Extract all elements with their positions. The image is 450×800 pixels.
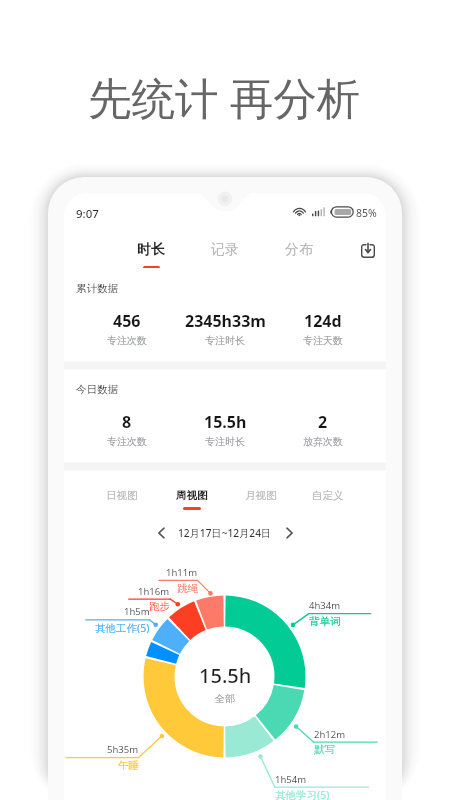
staticText: 专注次数 [107,435,147,448]
staticText: 456 [113,310,141,332]
button[interactable]: 时长 [129,236,173,272]
staticText: 全部 [215,692,235,705]
staticText: 累计数据 [76,282,118,295]
staticText: 9:07 [76,206,99,222]
staticText: 85% [356,206,377,220]
button[interactable]: Next week [280,524,298,542]
staticText: 背单词 [309,615,341,627]
button[interactable]: 累计数据 [64,268,386,361]
staticText: 默写 [314,743,335,755]
staticText: 15.5h [204,411,247,433]
button[interactable]: 自定义 [306,486,350,512]
button[interactable]: 记录 [203,236,247,272]
staticText: 自定义 [312,489,344,502]
staticText: 周视图 [176,489,208,502]
staticText: 专注时长 [205,435,245,448]
staticText: 2 [318,411,328,433]
staticText: 5h35m [107,743,139,755]
staticText: 12月17日~12月24日 [178,526,272,540]
staticText: 8 [122,411,132,433]
staticText: 跳绳 [177,582,198,594]
staticText: 1h16m [138,585,170,597]
staticText: 先统计 再分析 [88,67,361,126]
staticText: 124d [304,310,342,332]
staticText: 放弃次数 [303,435,343,448]
button[interactable]: 分布 [277,236,321,272]
staticText: 日视图 [106,489,138,502]
staticText: 2345h33m [185,310,266,332]
staticText: 分布 [285,241,313,259]
staticText: 1h11m [166,566,198,578]
button[interactable]: 今日数据 [64,369,386,462]
staticText: 记录 [211,241,239,259]
button[interactable]: 周视图 [170,486,214,512]
button[interactable]: 月视图 [239,486,283,512]
staticText: 2h12m [314,728,346,740]
staticText: 15.5h [199,662,252,689]
staticText: 4h34m [309,599,341,611]
staticText: 月视图 [245,489,277,502]
staticText: 跑步 [149,600,170,612]
staticText: 午睡 [118,759,139,771]
staticText: 其他工作(5) [95,621,150,633]
staticText: 专注次数 [107,334,147,347]
staticText: 时长 [137,241,165,259]
button[interactable]: 日视图 [100,486,144,512]
staticText: 专注天数 [303,334,343,347]
button[interactable]: Export [361,244,375,258]
staticText: 1h54m [275,773,307,785]
staticText: 今日数据 [76,383,118,396]
staticText: 1h5m [124,605,150,617]
staticText: 其他学习(5) [275,788,330,800]
staticText: 专注时长 [205,334,245,347]
button[interactable]: Previous week [152,524,170,542]
